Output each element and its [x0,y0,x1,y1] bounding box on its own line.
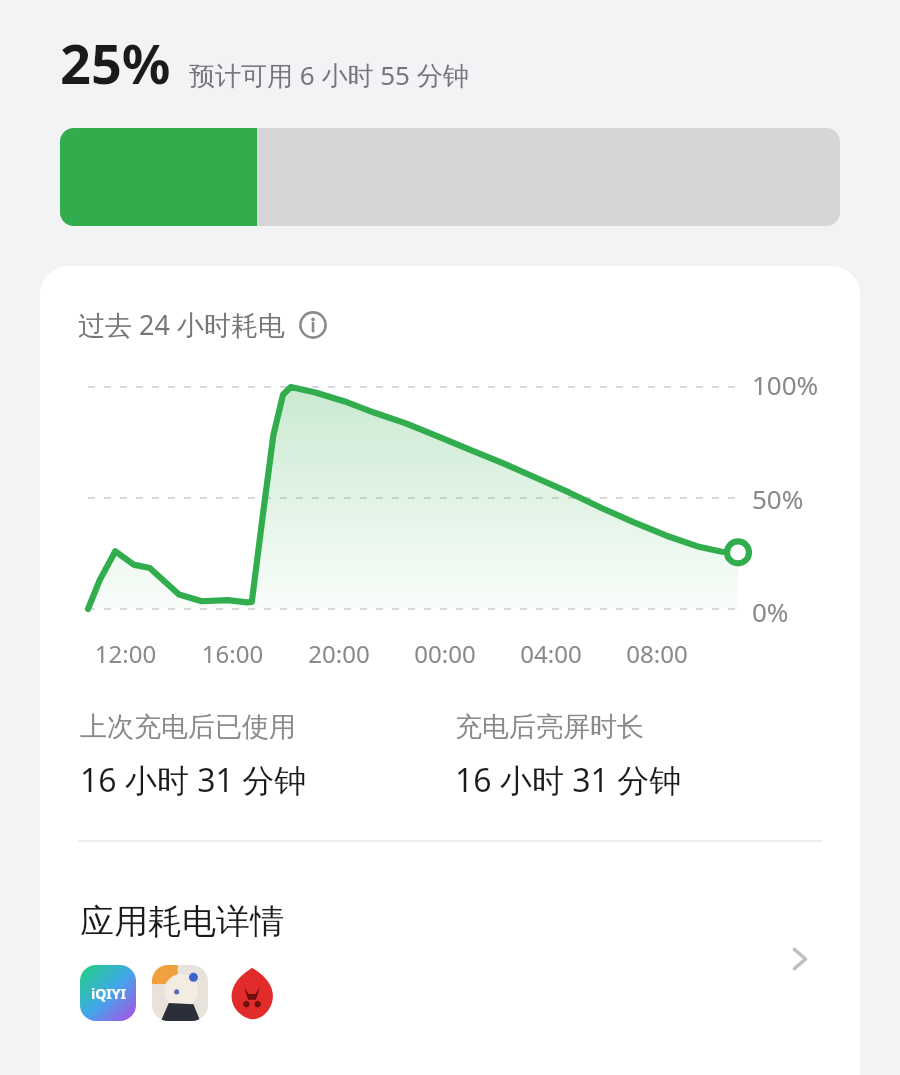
staticText: 16 小时 31 分钟 [80,758,307,802]
other: App power details [780,939,820,979]
button[interactable]: 过去 24 小时耗电 [78,306,327,343]
staticText: 100% [752,367,819,402]
staticText: 预计可用 6 小时 55 分钟 [189,57,469,93]
staticText: 50% [752,481,804,516]
staticText: 00:00 [392,637,498,670]
staticText: 充电后亮屏时长 [455,710,644,744]
staticText: 25% [60,26,171,100]
staticText: 0% [752,594,789,629]
staticText: 16:00 [179,637,286,670]
staticText: 08:00 [604,637,710,670]
staticText: 20:00 [286,637,392,670]
staticText: 04:00 [498,637,604,670]
button[interactable]: 应用耗电详情 [40,842,860,1075]
staticText: 过去 24 小时耗电 [78,306,285,343]
staticText: 上次充电后已使用 [80,710,296,744]
staticText: 16 小时 31 分钟 [455,758,682,802]
staticText: 应用耗电详情 [80,900,284,943]
staticText: iQIYI [91,984,126,1003]
other: Info [299,311,327,339]
staticText: 12:00 [72,637,179,670]
